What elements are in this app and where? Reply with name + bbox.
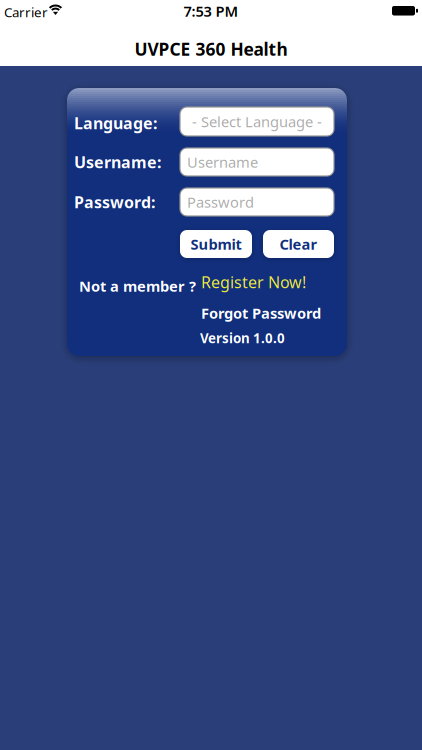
staticText: Version 1.0.0 — [200, 329, 285, 347]
staticText: Username: — [74, 151, 161, 173]
staticText: Submit — [190, 234, 241, 254]
button[interactable]: Password — [180, 188, 334, 216]
button[interactable]: Username — [180, 148, 334, 176]
button[interactable]: - Select Language - — [180, 107, 334, 136]
staticText: - Select Language - — [192, 112, 322, 131]
staticText: UVPCE 360 Health — [134, 37, 287, 60]
button[interactable]: Submit — [180, 230, 252, 258]
staticText: Password — [187, 192, 254, 212]
staticText: Not a member ? — [79, 276, 196, 296]
staticText: Register Now! — [201, 271, 306, 293]
staticText: Carrier — [4, 3, 48, 21]
button[interactable]: Register Now! — [201, 272, 306, 292]
staticText: 7:53 PM — [183, 1, 238, 21]
staticText: Password: — [74, 191, 155, 213]
staticText: Language: — [74, 112, 157, 134]
button[interactable]: Clear — [263, 230, 334, 258]
staticText: Clear — [279, 234, 317, 254]
staticText: Forgot Password — [201, 303, 321, 323]
staticText: Username — [187, 152, 258, 172]
button[interactable]: Forgot Password — [201, 303, 321, 323]
